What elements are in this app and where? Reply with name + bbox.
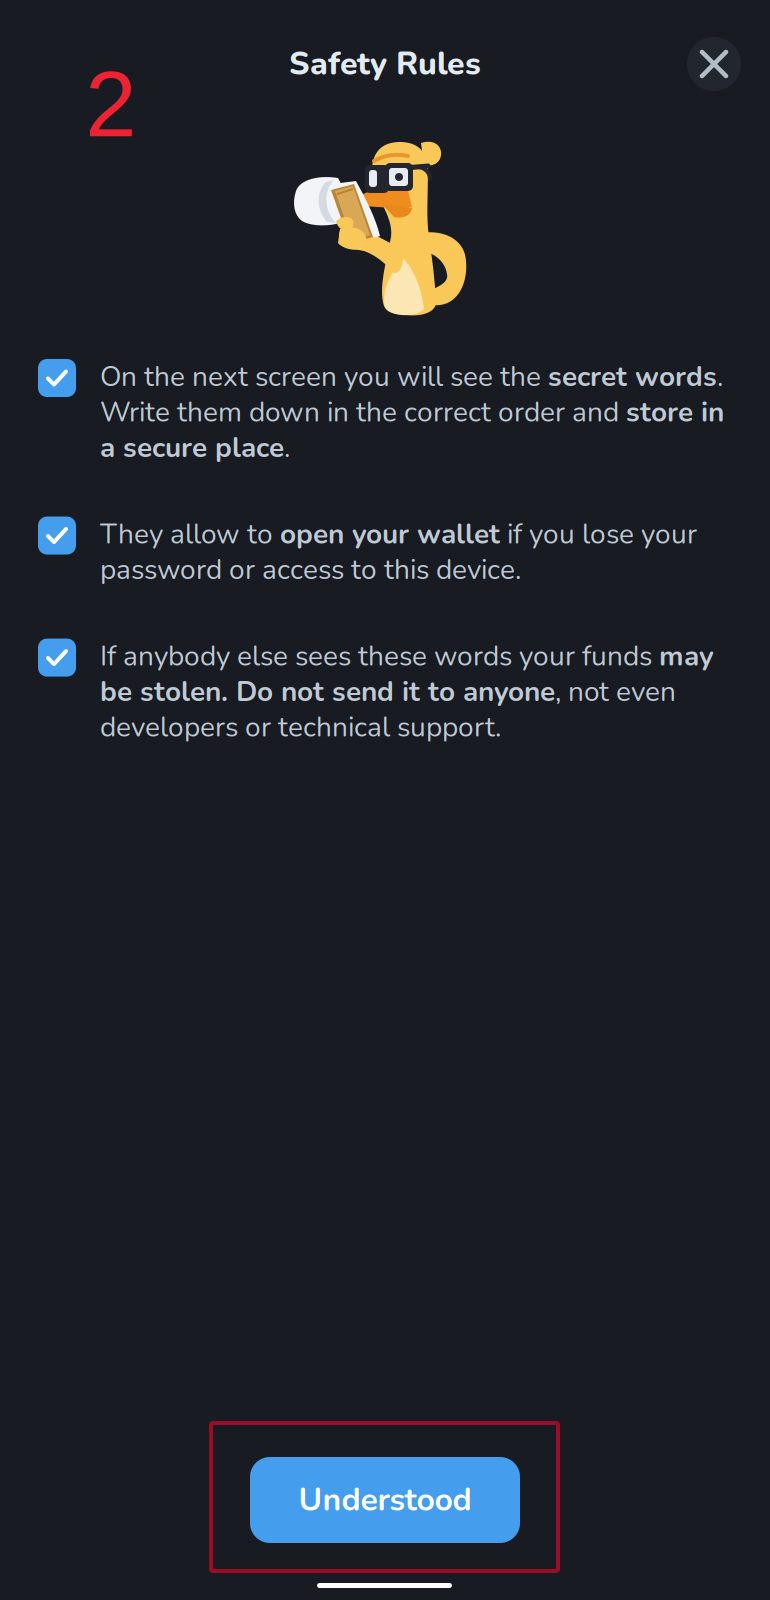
staticText: If anybody else sees these words your fu… (100, 639, 714, 745)
button[interactable]: Close (687, 37, 741, 91)
staticText: Understood (298, 1478, 471, 1522)
staticText: They allow to open your wallet if you lo… (100, 517, 697, 588)
staticText: 2 (85, 53, 136, 156)
button[interactable]: Understood (250, 1457, 520, 1543)
staticText: On the next screen you will see the secr… (100, 359, 724, 466)
staticText: Safety Rules (289, 42, 481, 86)
